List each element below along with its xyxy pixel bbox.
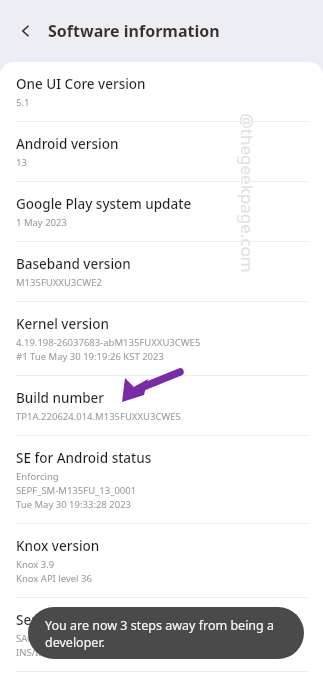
button[interactable]: SE for Android status <box>0 436 323 524</box>
staticText: Google Play system update <box>16 195 192 213</box>
staticText: You are now 3 steps away from being a de… <box>45 617 290 650</box>
staticText: @thegeekpage.com <box>235 113 258 273</box>
staticText: Service provider SW version <box>16 611 195 629</box>
staticText: M135FUXXU3CWE2 <box>16 276 102 289</box>
staticText: Software information <box>48 20 220 42</box>
button[interactable]: Kernel version <box>0 302 323 376</box>
staticText: Baseband version <box>16 255 131 273</box>
staticText: SE for Android status <box>16 449 152 467</box>
staticText: SEPF_SM-M135FU_13_0001 <box>16 484 137 497</box>
staticText: Knox 3.9 <box>16 558 55 571</box>
staticText: TP1A.220624.014.M135FUXXU3CWE5 <box>16 410 181 423</box>
staticText: One UI Core version <box>16 75 146 93</box>
button[interactable]: Android version <box>0 122 323 182</box>
staticText: #1 Tue May 30 19:19:26 KST 2023 <box>16 350 164 363</box>
staticText: Build number <box>16 389 105 407</box>
staticText: 1 May 2023 <box>16 216 67 229</box>
staticText: Knox API level 36 <box>16 572 92 585</box>
staticText: INS/INS,INS/INS <box>16 646 89 659</box>
button[interactable]: One UI Core version <box>0 62 323 122</box>
button[interactable]: Build number <box>0 376 323 436</box>
button[interactable]: Baseband version <box>0 242 323 302</box>
staticText: Enforcing <box>16 470 59 483</box>
staticText: Android version <box>16 135 119 153</box>
staticText: 5.1 <box>16 96 30 109</box>
button[interactable]: Service provider SW version <box>0 598 323 672</box>
staticText: Kernel version <box>16 315 109 333</box>
button[interactable]: Back <box>8 13 44 49</box>
staticText: Knox version <box>16 537 100 555</box>
staticText: SAOMC_SM-M135F_OXM_INS_13_0027 <box>16 632 187 645</box>
button[interactable]: Google Play system update <box>0 182 323 242</box>
staticText: 4.19.198-26037683-abM135FUXXU3CWE5 <box>16 336 201 349</box>
staticText: Tue May 30 19:33:28 2023 <box>16 498 132 511</box>
staticText: 13 <box>16 156 27 169</box>
button[interactable]: Knox version <box>0 524 323 598</box>
